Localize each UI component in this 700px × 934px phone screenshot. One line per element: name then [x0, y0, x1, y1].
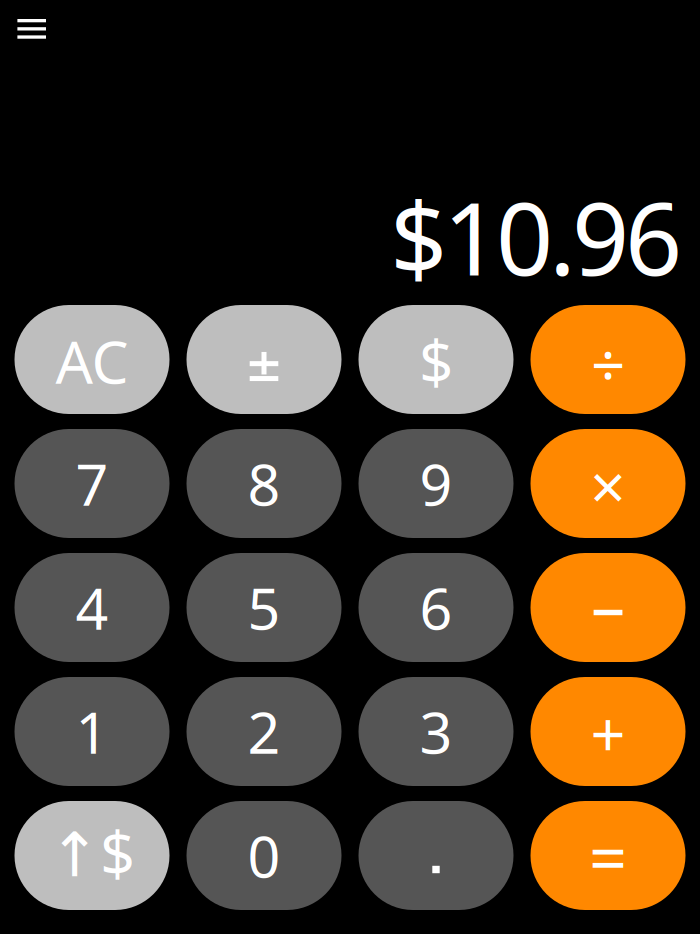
- staticText: 7: [75, 445, 108, 521]
- staticText: ↑$: [49, 812, 135, 893]
- staticText: ×: [590, 444, 626, 527]
- staticText: AC: [55, 322, 128, 400]
- staticText: 9: [419, 445, 452, 521]
- staticText: =: [589, 813, 627, 901]
- staticText: 6: [419, 569, 452, 645]
- button[interactable]: 3: [358, 677, 513, 786]
- button[interactable]: Plus: [530, 677, 685, 786]
- staticText: 1: [75, 693, 108, 769]
- button[interactable]: 7: [14, 429, 169, 538]
- button[interactable]: 4: [14, 553, 169, 662]
- button[interactable]: All clear: [14, 305, 169, 414]
- staticText: 8: [247, 445, 280, 521]
- staticText: 5: [247, 569, 280, 645]
- button[interactable]: Equals: [530, 801, 685, 910]
- button[interactable]: 5: [186, 553, 341, 662]
- button[interactable]: Currency: [358, 305, 513, 414]
- staticText: 2: [247, 693, 280, 769]
- staticText: +: [590, 693, 625, 774]
- button[interactable]: Minus: [530, 553, 685, 662]
- staticText: 3: [419, 693, 452, 769]
- button[interactable]: 8: [186, 429, 341, 538]
- staticText: $10.96: [390, 170, 682, 303]
- button[interactable]: Menu: [0, 0, 62, 53]
- button[interactable]: 1: [14, 677, 169, 786]
- button[interactable]: 6: [358, 553, 513, 662]
- staticText: 0: [247, 817, 280, 893]
- button[interactable]: 9: [358, 429, 513, 538]
- button[interactable]: Toggle sign: [186, 305, 341, 414]
- button[interactable]: Convert currency: [14, 801, 169, 910]
- button[interactable]: 2: [186, 677, 341, 786]
- staticText: 4: [75, 569, 108, 645]
- staticText: $: [419, 321, 453, 401]
- button[interactable]: Multiply: [530, 429, 685, 538]
- button[interactable]: Decimal point: [358, 801, 513, 910]
- button[interactable]: Divide: [530, 305, 685, 414]
- button[interactable]: 0: [186, 801, 341, 910]
- staticText: ÷: [591, 324, 625, 403]
